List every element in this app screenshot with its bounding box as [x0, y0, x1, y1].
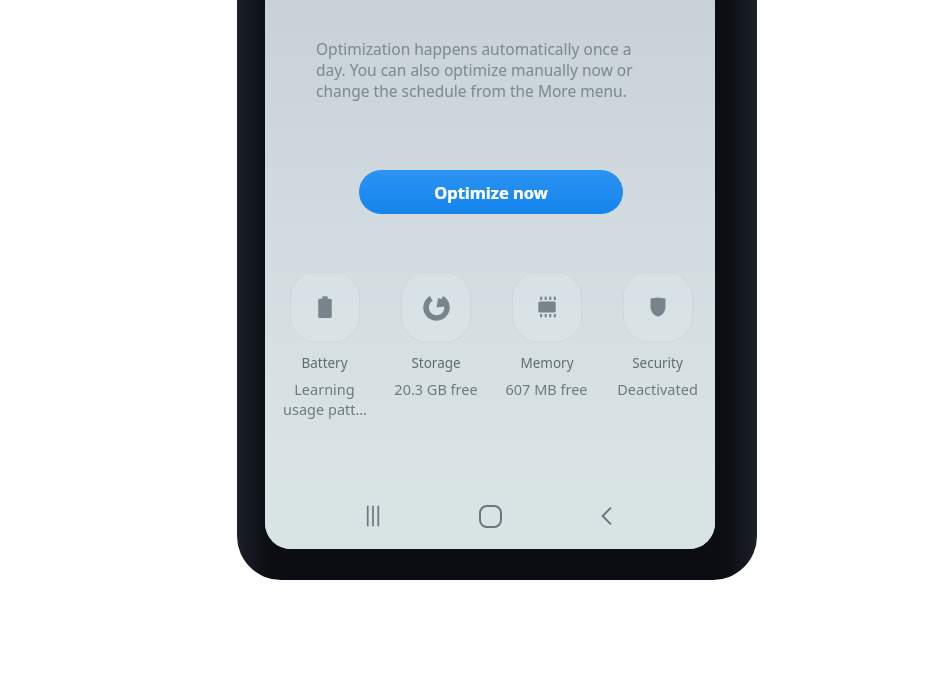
staticText: 20.3 GB free	[394, 379, 478, 399]
staticText: day. You can also optimize manually now …	[316, 59, 633, 80]
button[interactable]: Security	[602, 272, 713, 399]
staticText: Optimization happens automatically once …	[316, 38, 632, 59]
button[interactable]: Recents	[343, 486, 403, 546]
staticText: Storage	[411, 354, 461, 372]
staticText: Memory	[520, 354, 574, 372]
button[interactable]: Storage	[380, 272, 491, 399]
staticText: change the schedule from the More menu.	[316, 80, 627, 101]
button[interactable]: Memory	[491, 272, 602, 399]
staticText: Deactivated	[617, 379, 698, 399]
button[interactable]: Back	[577, 486, 637, 546]
staticText: usage patt…	[283, 399, 367, 419]
button[interactable]: Optimize now	[359, 170, 623, 214]
staticText: 607 MB free	[505, 379, 588, 399]
staticText: Optimize now	[434, 181, 548, 203]
staticText: Battery	[301, 354, 348, 372]
staticText: Security	[632, 354, 683, 372]
staticText: Learning	[294, 379, 355, 399]
button[interactable]: Home	[460, 486, 520, 546]
button[interactable]: Battery	[269, 272, 380, 419]
